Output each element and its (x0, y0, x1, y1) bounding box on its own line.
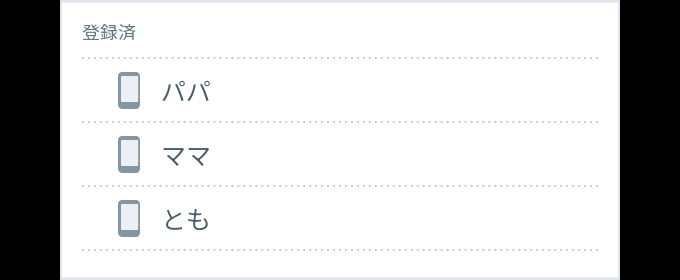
staticText: ママ (161, 136, 212, 172)
button[interactable]: とも (60, 187, 620, 249)
staticText: パパ (161, 72, 212, 108)
staticText: 登録済 (82, 18, 136, 44)
button[interactable]: パパ (60, 59, 620, 121)
staticText: とも (161, 200, 212, 236)
button[interactable]: ママ (60, 123, 620, 185)
